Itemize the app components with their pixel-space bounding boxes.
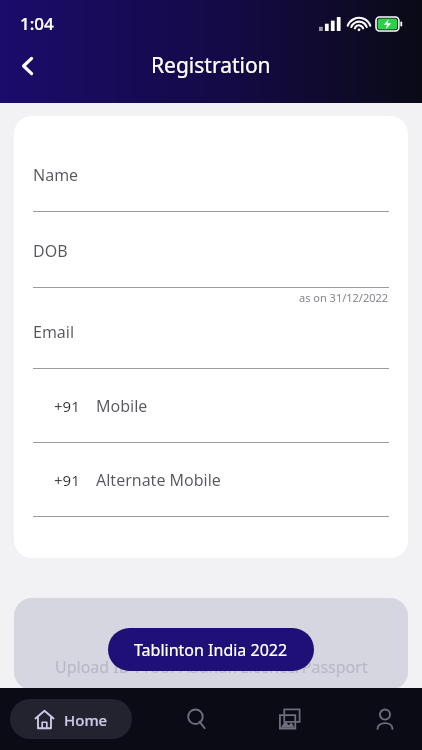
button[interactable]: +91: [14, 369, 408, 443]
button[interactable]: DOB: [14, 212, 408, 288]
staticText: Alternate Mobile: [96, 469, 221, 491]
staticText: Registration: [151, 51, 271, 80]
staticText: Home: [64, 710, 108, 730]
staticText: DOB: [33, 240, 68, 262]
staticText: 1:04: [20, 12, 54, 35]
staticText: Mobile: [96, 395, 148, 417]
staticText: +91: [54, 396, 80, 416]
button[interactable]: Tablinton India 2022: [108, 628, 314, 671]
staticText: Name: [33, 164, 79, 186]
staticText: as on 31/12/2022: [299, 290, 389, 305]
staticText: Upload ID Proof Aadhar/Licence/Passport: [55, 656, 368, 678]
button[interactable]: Back: [6, 44, 50, 88]
button[interactable]: Gallery: [267, 696, 313, 742]
staticText: Email: [33, 321, 75, 343]
staticText: +91: [54, 470, 80, 490]
staticText: Tablinton India 2022: [134, 639, 288, 661]
button[interactable]: Profile: [362, 696, 408, 742]
button[interactable]: +91: [14, 443, 408, 517]
button[interactable]: Email: [14, 305, 408, 369]
button[interactable]: Name: [14, 116, 408, 212]
button[interactable]: Search: [174, 696, 220, 742]
button[interactable]: Home: [10, 699, 132, 739]
